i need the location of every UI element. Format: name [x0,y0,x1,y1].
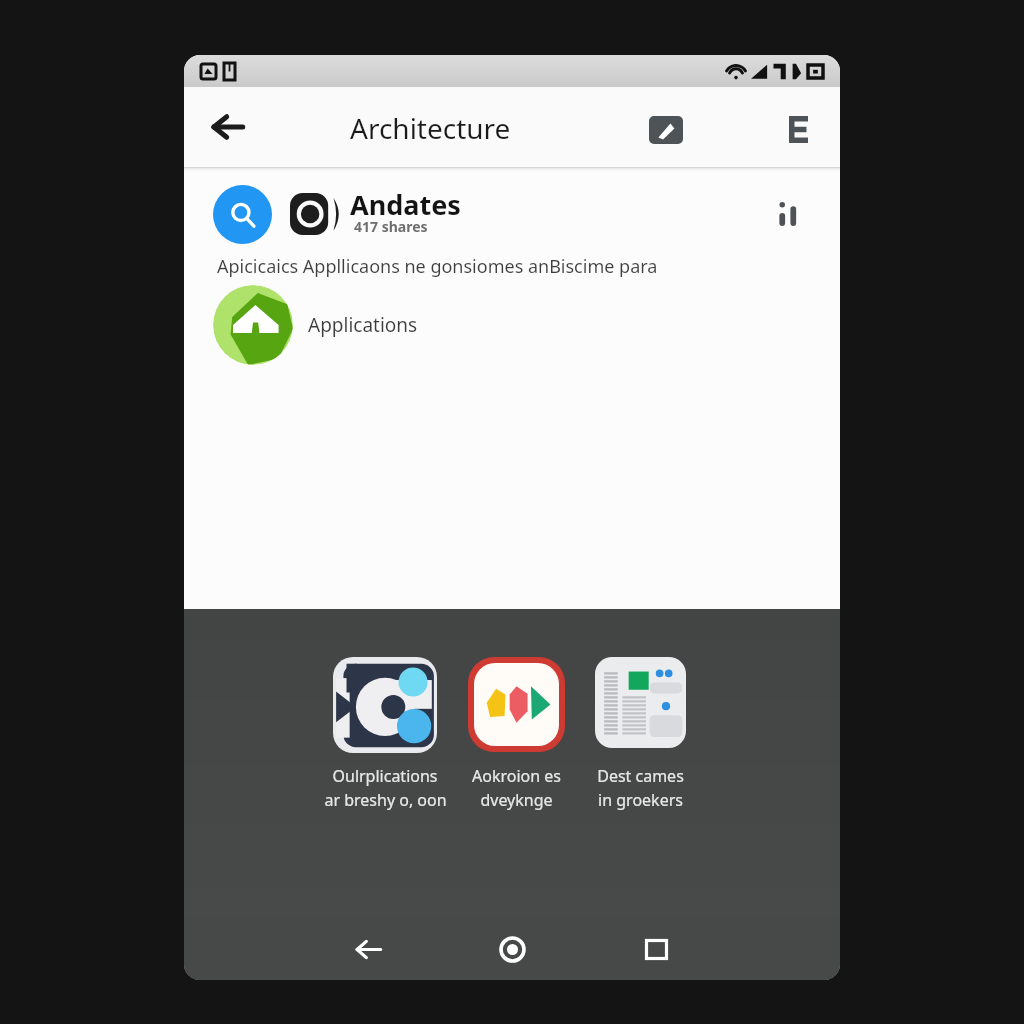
staticText: Architecture [350,109,511,147]
button[interactable]: Dest cames [576,657,704,811]
staticText: Dest cames [597,765,684,787]
button[interactable]: Back [338,919,398,979]
staticText: ar breshy o, oon [324,789,447,811]
staticText: Oulrplications [332,765,438,787]
staticText: dveyknge [480,789,553,811]
button[interactable]: Edit [645,109,687,151]
button[interactable]: Andates [290,180,461,248]
button[interactable]: Search [213,185,272,244]
staticText: Applications [308,312,418,338]
staticText: Andates [350,186,461,223]
staticText: Aokroion es [472,765,561,787]
button[interactable]: Home [482,919,542,979]
button[interactable]: Menu [776,107,820,151]
staticText: in groekers [598,789,683,811]
button[interactable]: Oulrplications [321,657,449,811]
staticText: 417 shares [354,217,428,236]
button[interactable]: Applications [184,276,840,374]
button[interactable]: Statistics [768,194,808,234]
staticText: Apicicaics Appllicaons ne gonsiomes anBi… [217,254,658,279]
button[interactable]: Back [202,101,254,153]
button[interactable]: Aokroion es [452,657,580,811]
button[interactable]: Recents [626,919,686,979]
